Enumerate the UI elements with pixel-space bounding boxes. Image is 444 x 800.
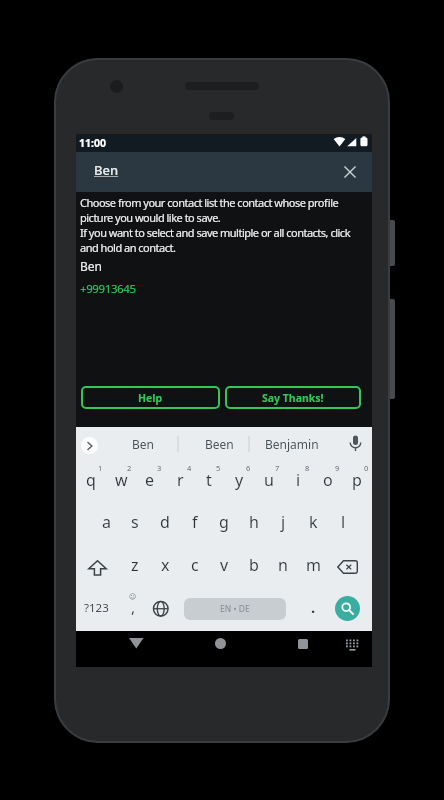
button[interactable]: y bbox=[224, 459, 254, 501]
button[interactable]: a bbox=[91, 501, 121, 543]
button[interactable]: d bbox=[150, 501, 180, 543]
button[interactable]: k bbox=[298, 501, 328, 543]
staticText: Benjamin bbox=[265, 436, 319, 452]
staticText: Been bbox=[205, 436, 234, 452]
staticText: n bbox=[278, 554, 288, 576]
button[interactable]: t bbox=[194, 459, 224, 501]
staticText: g bbox=[219, 511, 229, 533]
button[interactable]: ?123 bbox=[77, 588, 115, 628]
button[interactable]: m bbox=[298, 544, 328, 586]
button[interactable]: Help bbox=[81, 386, 220, 409]
button[interactable]: h bbox=[239, 501, 269, 543]
staticText: EN • DE bbox=[220, 603, 250, 615]
button[interactable] bbox=[338, 160, 362, 184]
staticText: 1 bbox=[98, 463, 103, 473]
staticText: Help bbox=[138, 391, 163, 405]
staticText: p bbox=[352, 469, 362, 491]
button[interactable]: u bbox=[254, 459, 284, 501]
button[interactable]: c bbox=[180, 544, 210, 586]
staticText: Ben bbox=[94, 161, 119, 179]
button[interactable]: f bbox=[180, 501, 210, 543]
staticText: c bbox=[191, 554, 199, 576]
staticText: e bbox=[145, 469, 155, 491]
staticText: 8 bbox=[305, 463, 310, 473]
staticText: f bbox=[192, 511, 198, 533]
staticText: 9 bbox=[335, 463, 340, 473]
button[interactable] bbox=[82, 557, 112, 579]
staticText: z bbox=[131, 554, 139, 576]
button[interactable] bbox=[120, 631, 152, 656]
button[interactable]: Say Thanks! bbox=[225, 386, 361, 409]
staticText: b bbox=[249, 554, 259, 576]
button[interactable]: b bbox=[239, 544, 269, 586]
staticText: q bbox=[86, 469, 96, 491]
button[interactable]: v bbox=[209, 544, 239, 586]
staticText: j bbox=[281, 511, 286, 533]
staticText: , bbox=[131, 597, 136, 617]
staticText: 6 bbox=[246, 463, 251, 473]
button[interactable] bbox=[204, 631, 236, 656]
staticText: 5 bbox=[216, 463, 221, 473]
staticText: Say Thanks! bbox=[262, 391, 324, 405]
staticText: u bbox=[264, 469, 274, 491]
button[interactable]: r bbox=[165, 459, 195, 501]
button[interactable] bbox=[342, 632, 362, 658]
button[interactable]: g bbox=[209, 501, 239, 543]
button[interactable]: Been bbox=[189, 430, 249, 458]
staticText: 11:00 bbox=[79, 136, 106, 150]
staticText: ☺ bbox=[129, 593, 137, 601]
staticText: a bbox=[102, 511, 111, 533]
staticText: d bbox=[160, 511, 170, 533]
staticText: l bbox=[341, 511, 346, 533]
staticText: 2 bbox=[127, 463, 132, 473]
staticText: o bbox=[323, 469, 333, 491]
button[interactable]: l bbox=[328, 501, 358, 543]
button[interactable]: n bbox=[268, 544, 298, 586]
staticText: Ben bbox=[80, 258, 102, 274]
staticText: m bbox=[306, 554, 321, 576]
button[interactable]: , bbox=[121, 587, 145, 627]
staticText: ?123 bbox=[84, 600, 109, 616]
button[interactable]: q bbox=[76, 459, 106, 501]
staticText: 0 bbox=[364, 463, 369, 473]
staticText: Ben bbox=[132, 436, 154, 452]
staticText: 7 bbox=[275, 463, 280, 473]
button[interactable] bbox=[335, 596, 360, 621]
staticText: t bbox=[206, 469, 212, 491]
staticText: r bbox=[177, 469, 184, 491]
staticText: s bbox=[131, 511, 139, 533]
button[interactable]: Benjamin bbox=[257, 430, 327, 458]
button[interactable]: p bbox=[342, 459, 372, 501]
staticText: Choose from your contact list the contac… bbox=[80, 195, 351, 255]
button[interactable] bbox=[345, 433, 365, 455]
button[interactable] bbox=[149, 597, 172, 620]
staticText: k bbox=[309, 511, 318, 533]
staticText: i bbox=[296, 469, 301, 491]
button[interactable]: Ben bbox=[113, 430, 173, 458]
button[interactable] bbox=[287, 631, 319, 656]
button[interactable]: z bbox=[120, 544, 150, 586]
button[interactable]: x bbox=[150, 544, 180, 586]
button[interactable]: j bbox=[268, 501, 298, 543]
button[interactable]: o bbox=[313, 459, 343, 501]
button[interactable] bbox=[81, 437, 98, 454]
button[interactable]: s bbox=[120, 501, 150, 543]
button[interactable]: i bbox=[283, 459, 313, 501]
staticText: v bbox=[220, 554, 229, 576]
staticText: x bbox=[161, 554, 170, 576]
staticText: h bbox=[249, 511, 259, 533]
staticText: y bbox=[235, 469, 244, 491]
button[interactable]: +99913645 bbox=[80, 281, 136, 297]
staticText: w bbox=[115, 469, 128, 491]
staticText: 4 bbox=[187, 463, 192, 473]
button[interactable]: w bbox=[106, 459, 136, 501]
staticText: . bbox=[311, 597, 316, 617]
button[interactable]: . bbox=[301, 587, 325, 627]
button[interactable]: EN • DE bbox=[184, 598, 286, 620]
button[interactable]: e bbox=[135, 459, 165, 501]
staticText: 3 bbox=[157, 463, 162, 473]
button[interactable] bbox=[334, 557, 360, 577]
